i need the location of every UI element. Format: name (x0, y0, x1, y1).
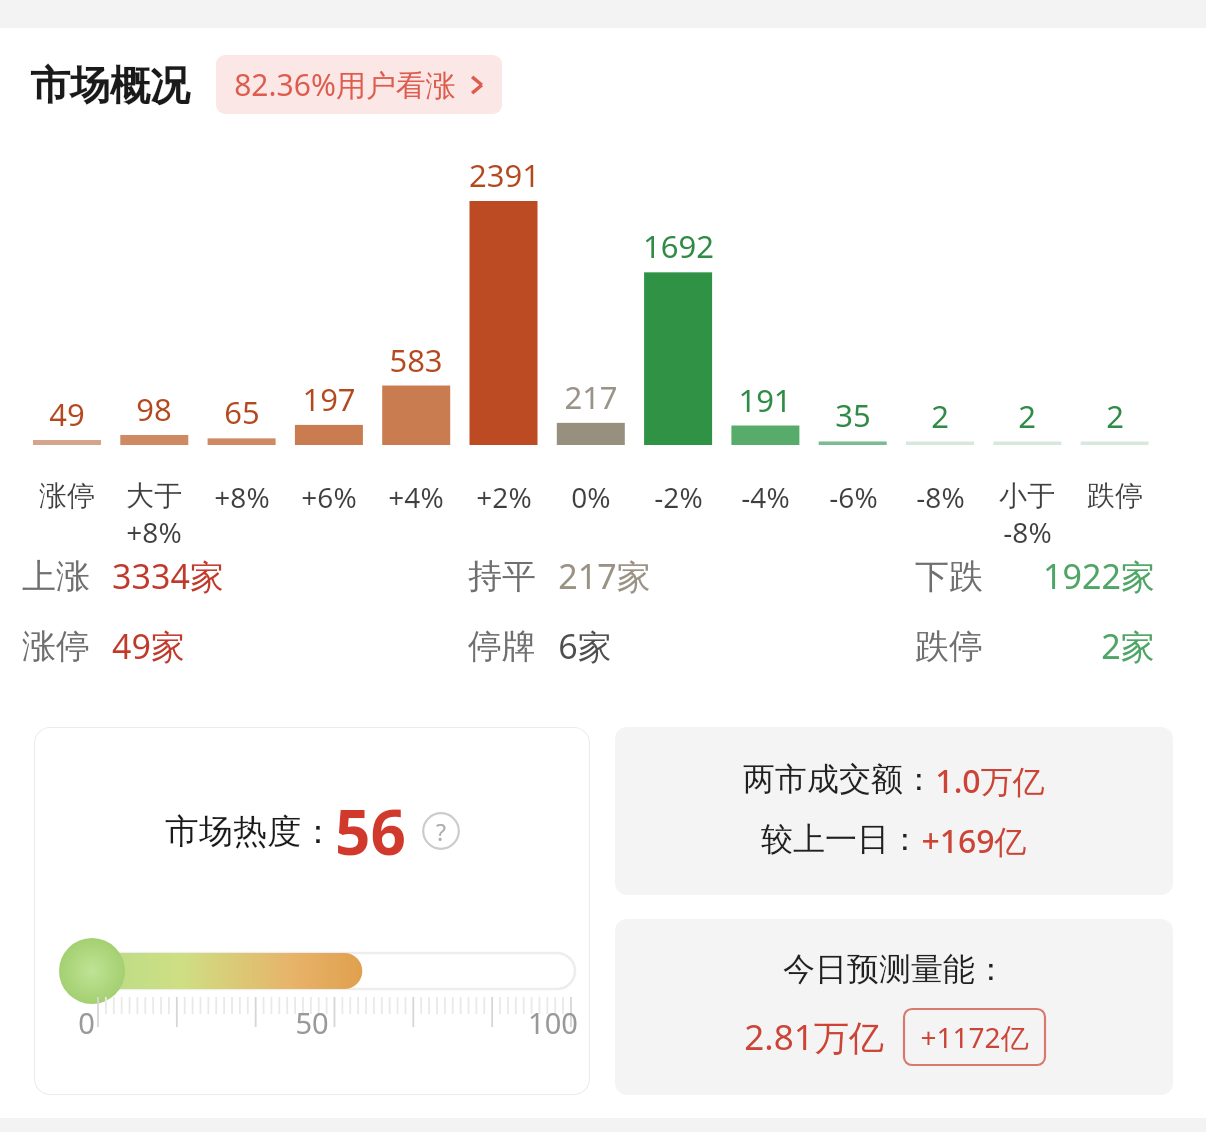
staticText: 50 (295, 1003, 329, 1042)
button[interactable]: 市场热度说明 (422, 812, 460, 850)
staticText: 两市成交额： (743, 759, 935, 799)
staticText: 49 (49, 393, 85, 435)
staticText: 较上一日： (761, 819, 921, 859)
staticText: 191 (738, 379, 792, 421)
staticText: 1692 (643, 225, 714, 267)
staticText: 49家 (112, 623, 185, 669)
staticText: 停牌 (468, 625, 536, 668)
staticText: 6家 (558, 623, 612, 669)
button[interactable]: 今日预测量能： (615, 919, 1173, 1095)
staticText: 2 (1018, 395, 1036, 437)
staticText: +8% (214, 478, 270, 516)
staticText: +8% (126, 513, 182, 551)
staticText: 217 (564, 376, 618, 418)
staticText: 35 (835, 394, 871, 436)
staticText: 3334家 (112, 553, 224, 599)
staticText: 2 (1106, 395, 1124, 437)
staticText: +6% (301, 478, 357, 516)
staticText: 跌停 (1087, 478, 1143, 513)
staticText: 65 (224, 391, 260, 433)
staticText: 涨停 (39, 478, 95, 513)
staticText: 56 (335, 789, 406, 873)
staticText: +4% (388, 478, 444, 516)
staticText: 197 (302, 378, 356, 420)
staticText: ? (436, 816, 446, 847)
staticText: -8% (1003, 513, 1052, 551)
staticText: -8% (916, 478, 965, 516)
staticText: 2.81万亿 (744, 1013, 884, 1061)
button[interactable]: 两市成交额： (615, 727, 1173, 895)
button[interactable]: 市场热度： (34, 727, 590, 1095)
button[interactable]: 82.36%用户看涨 (216, 55, 502, 114)
staticText: 市场热度： (165, 810, 335, 853)
staticText: 98 (136, 388, 172, 430)
staticText: 1922家 (1043, 553, 1155, 599)
staticText: 0% (571, 478, 611, 516)
staticText: 下跌 (915, 555, 983, 598)
staticText: 市场概况 (30, 60, 190, 110)
staticText: 小于 (999, 478, 1055, 513)
staticText: 583 (389, 339, 443, 381)
staticText: 跌停 (915, 625, 983, 668)
staticText: +169亿 (921, 819, 1027, 863)
staticText: 0 (78, 1003, 95, 1042)
staticText: 82.36%用户看涨 (234, 64, 456, 105)
staticText: 大于 (126, 478, 182, 513)
staticText: 2 (931, 395, 949, 437)
staticText: 今日预测量能： (783, 949, 1007, 989)
staticText: -6% (829, 478, 878, 516)
staticText: 持平 (468, 555, 536, 598)
staticText: -2% (654, 478, 703, 516)
staticText: 涨停 (22, 625, 90, 668)
staticText: +1172亿 (920, 1018, 1029, 1056)
staticText: 217家 (558, 553, 651, 599)
staticText: +2% (476, 478, 532, 516)
staticText: 100 (528, 1003, 578, 1042)
staticText: 2391 (469, 154, 540, 196)
staticText: -4% (741, 478, 790, 516)
staticText: 上涨 (22, 555, 90, 598)
staticText: 2家 (1101, 623, 1155, 669)
staticText: 1.0万亿 (935, 759, 1045, 803)
